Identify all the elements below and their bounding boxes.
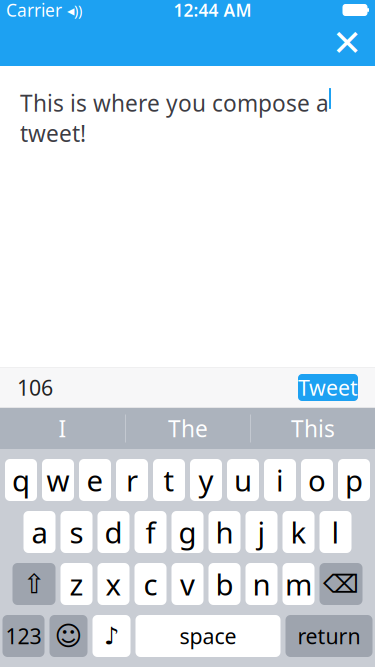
staticText: space (179, 622, 236, 650)
button[interactable]: ⌫ (319, 563, 362, 605)
button[interactable]: ♪ (92, 615, 130, 657)
staticText: m (285, 564, 312, 603)
button[interactable]: e (79, 459, 111, 501)
staticText: ◂)) (62, 0, 82, 20)
staticText: v (180, 564, 195, 603)
staticText: ⇧ (23, 569, 45, 599)
button[interactable]: a (23, 511, 55, 553)
button[interactable]: f (134, 511, 166, 553)
staticText: l (331, 512, 339, 551)
staticText: ✕ (332, 23, 362, 63)
button[interactable]: The (126, 408, 250, 449)
staticText: Carrier (6, 0, 62, 21)
button[interactable]: ⇧ (12, 563, 55, 605)
staticText: t (163, 460, 174, 499)
button[interactable]: c (134, 563, 166, 605)
staticText: k (290, 512, 306, 551)
staticText: This (291, 413, 335, 443)
staticText: h (215, 512, 233, 551)
button[interactable]: d (97, 511, 129, 553)
button[interactable]: s (60, 511, 92, 553)
button[interactable]: p (338, 459, 370, 501)
button[interactable]: return (285, 615, 372, 657)
staticText: d (104, 512, 122, 551)
staticText: a (31, 512, 47, 551)
staticText: ♪ (104, 622, 119, 650)
staticText: 12:44 AM (173, 0, 251, 21)
button[interactable]: b (208, 563, 240, 605)
staticText: g (178, 512, 196, 551)
button[interactable]: i (264, 459, 296, 501)
staticText: Tweet (298, 373, 358, 402)
button[interactable]: u (227, 459, 259, 501)
button[interactable]: x (97, 563, 129, 605)
staticText: 106 (17, 373, 53, 402)
staticText: j (257, 512, 265, 551)
button[interactable]: m (282, 563, 314, 605)
button[interactable]: h (208, 511, 240, 553)
staticText: w (46, 460, 69, 499)
button[interactable]: g (171, 511, 203, 553)
staticText: I (58, 413, 66, 443)
button[interactable]: I (0, 408, 125, 449)
staticText: u (234, 460, 252, 499)
button[interactable]: n (245, 563, 277, 605)
button[interactable]: ☺ (49, 615, 87, 657)
button[interactable]: y (190, 459, 222, 501)
staticText: ☺ (54, 621, 82, 651)
staticText: The (168, 413, 208, 443)
staticText: c (143, 564, 157, 603)
staticText: This is where you compose a tweet! (20, 88, 329, 148)
button[interactable]: o (301, 459, 333, 501)
button[interactable]: t (153, 459, 185, 501)
staticText: ⌫ (323, 570, 359, 598)
button[interactable]: v (171, 563, 203, 605)
staticText: n (252, 564, 270, 603)
button[interactable]: space (135, 615, 280, 657)
button[interactable]: z (60, 563, 92, 605)
staticText: q (12, 460, 30, 499)
button[interactable]: Tweet (298, 374, 358, 401)
staticText: 123 (5, 622, 41, 650)
staticText: o (308, 460, 326, 499)
staticText: p (345, 460, 363, 499)
staticText: y (198, 460, 213, 499)
staticText: i (276, 460, 284, 499)
staticText: x (105, 564, 121, 603)
button[interactable]: j (245, 511, 277, 553)
button[interactable]: w (42, 459, 74, 501)
button[interactable]: This (251, 408, 375, 449)
button[interactable]: Close (325, 21, 369, 65)
staticText: b (215, 564, 233, 603)
staticText: return (297, 622, 360, 650)
button[interactable]: r (116, 459, 148, 501)
staticText: r (126, 460, 138, 499)
staticText: s (69, 512, 83, 551)
staticText: e (86, 460, 103, 499)
button[interactable]: q (5, 459, 37, 501)
button[interactable]: k (282, 511, 314, 553)
button[interactable]: 123 (2, 615, 44, 657)
button[interactable]: l (319, 511, 351, 553)
staticText: z (69, 564, 83, 603)
staticText: f (145, 512, 155, 551)
